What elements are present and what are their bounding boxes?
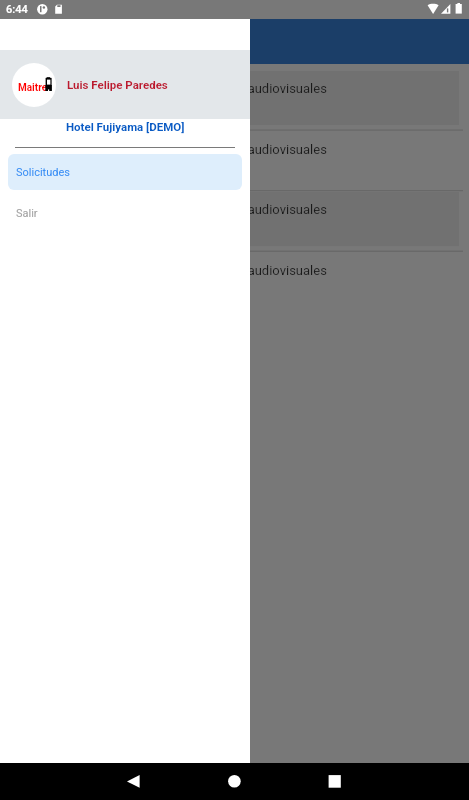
button[interactable]: Solicitudes	[8, 154, 242, 190]
button[interactable]: Back	[84, 763, 184, 800]
staticText: Salir	[16, 207, 38, 220]
staticText: Maitre	[18, 82, 48, 94]
staticText: Equipos audiovisuales	[198, 142, 327, 157]
button[interactable]: Home	[184, 763, 284, 800]
staticText: Equipos audiovisuales	[198, 263, 327, 278]
staticText: Luis Felipe Paredes	[67, 78, 168, 91]
staticText: Hotel Fujiyama [DEMO]	[66, 120, 185, 133]
staticText: Equipos audiovisuales	[198, 81, 327, 96]
staticText: Equipos audiovisuales	[198, 202, 327, 217]
staticText: 6:44	[6, 3, 28, 16]
button[interactable]: Recents	[284, 763, 384, 800]
staticText: Solicitudes	[16, 166, 70, 179]
button[interactable]: Salir	[8, 195, 242, 231]
